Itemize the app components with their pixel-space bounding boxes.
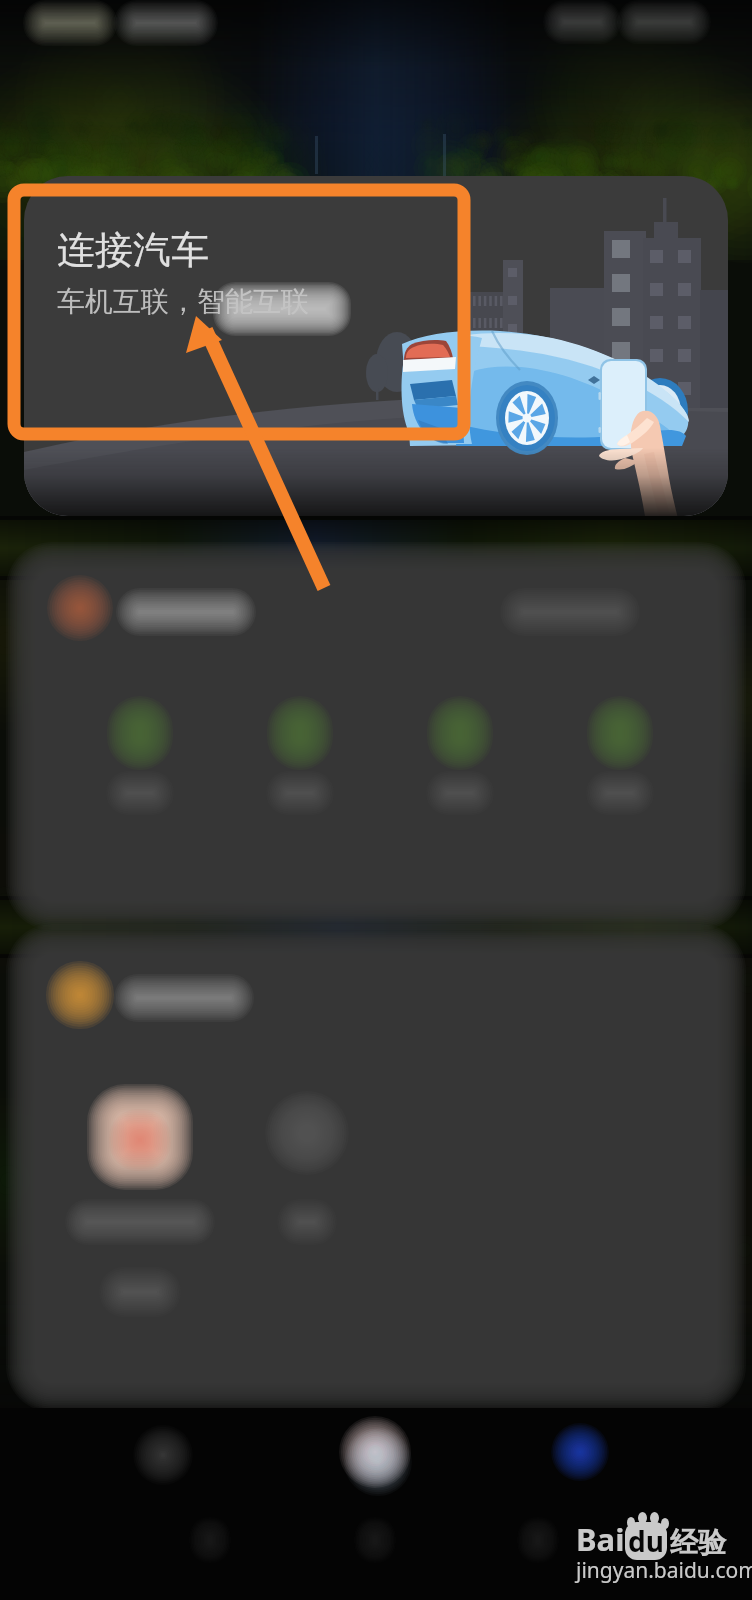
button[interactable]	[30, 945, 722, 1395]
button[interactable]: 连接汽车 车机互联	[24, 176, 728, 516]
staticText: du	[628, 1522, 664, 1560]
staticText: 连接汽车	[57, 226, 209, 274]
button[interactable]	[30, 558, 722, 920]
staticText: jingyan.baidu.com	[576, 1556, 752, 1585]
staticText: Bai	[576, 1518, 625, 1560]
staticText: 经验	[670, 1525, 726, 1560]
staticText: 车机互联，智能互联	[57, 284, 309, 319]
